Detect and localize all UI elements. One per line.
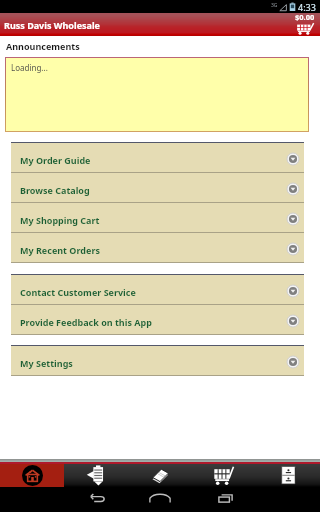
button[interactable]: Home (0, 464, 64, 487)
staticText: Browse Catalog (20, 184, 287, 196)
staticText: Russ Davis Wholesale (4, 19, 100, 31)
staticText: Contact Customer Service (20, 286, 287, 298)
button[interactable]: My Shopping Cart (11, 203, 304, 232)
staticText: $0.00 (295, 12, 315, 22)
staticText: Announcements (6, 40, 80, 52)
staticText: My Settings (20, 357, 287, 369)
button[interactable]: Shopping cart (295, 12, 315, 35)
button[interactable]: Browse Catalog (11, 173, 304, 202)
button[interactable]: Order guide (64, 464, 128, 487)
staticText: My Recent Orders (20, 244, 287, 256)
button[interactable]: My Settings (11, 346, 304, 375)
staticText: My Order Guide (20, 154, 287, 166)
button[interactable]: Recent apps (203, 485, 248, 510)
staticText: 3G (271, 2, 278, 9)
button[interactable]: My Order Guide (11, 143, 304, 172)
button[interactable]: Contact Customer Service (11, 275, 304, 304)
button[interactable]: Home (137, 485, 182, 510)
staticText: Loading... (11, 62, 48, 73)
staticText: Provide Feedback on this App (20, 316, 287, 328)
button[interactable]: Contact (256, 464, 320, 487)
button[interactable]: Catalog (128, 464, 192, 487)
button[interactable]: Back (75, 485, 120, 510)
staticText: 4:33 (298, 1, 316, 13)
button[interactable]: Provide Feedback on this App (11, 305, 304, 334)
button[interactable]: Cart (192, 464, 256, 487)
staticText: My Shopping Cart (20, 214, 287, 226)
button[interactable]: My Recent Orders (11, 233, 304, 262)
